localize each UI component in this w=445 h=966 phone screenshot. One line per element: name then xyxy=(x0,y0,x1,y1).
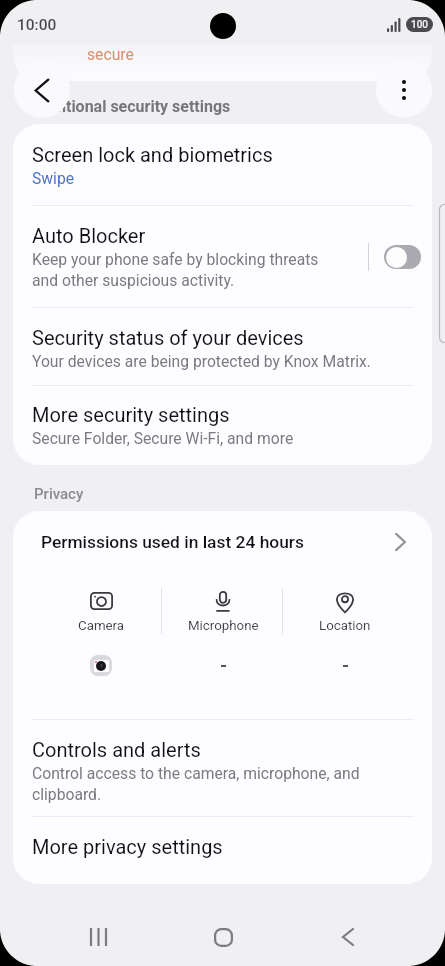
button[interactable]: Security status of your devices xyxy=(13,308,432,385)
staticText: Secure Folder, Secure Wi-Fi, and more xyxy=(32,429,294,447)
button[interactable]: Microphone xyxy=(162,580,284,676)
staticText: Privacy xyxy=(34,485,84,503)
button[interactable]: Auto Blocker xyxy=(384,245,421,269)
button[interactable]: Screen lock and biometrics xyxy=(13,124,432,205)
staticText: Your devices are being protected by Knox… xyxy=(32,352,371,370)
staticText: Microphone xyxy=(188,618,259,634)
button[interactable]: Back xyxy=(308,907,388,966)
button[interactable]: Location xyxy=(284,580,406,676)
staticText: secure xyxy=(87,45,134,63)
staticText: More security settings xyxy=(32,403,230,426)
staticText: Control access to the camera, microphone… xyxy=(32,764,360,803)
staticText: Swipe xyxy=(32,169,75,187)
button[interactable]: More options xyxy=(376,62,432,118)
staticText: Camera xyxy=(78,618,125,634)
staticText: Security status of your devices xyxy=(32,326,304,349)
button[interactable]: Recent apps xyxy=(58,907,138,966)
button[interactable]: More security settings xyxy=(13,386,432,465)
button[interactable]: Navigate up xyxy=(14,62,70,118)
button[interactable]: Permissions used in last 24 hours xyxy=(13,511,432,580)
button[interactable]: More privacy settings xyxy=(13,817,432,884)
button[interactable]: Auto Blocker xyxy=(13,206,432,307)
staticText: Screen lock and biometrics xyxy=(32,143,273,166)
staticText: 10:00 xyxy=(17,16,57,34)
button[interactable]: Home xyxy=(183,907,263,966)
staticText: Auto Blocker xyxy=(32,224,146,247)
staticText: Location xyxy=(319,618,371,634)
staticText: Permissions used in last 24 hours xyxy=(41,532,304,552)
button[interactable]: Controls and alerts xyxy=(13,720,432,816)
staticText: Keep your phone safe by blocking threats… xyxy=(32,250,319,289)
staticText: More privacy settings xyxy=(32,835,223,858)
staticText: ntional security settings xyxy=(57,97,231,116)
staticText: Controls and alerts xyxy=(32,738,201,761)
staticText: 100 xyxy=(411,19,429,31)
button[interactable]: Camera xyxy=(40,580,162,676)
